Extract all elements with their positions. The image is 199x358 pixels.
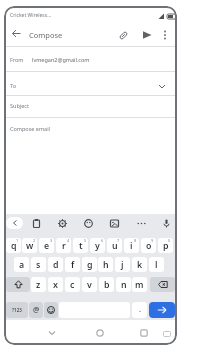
staticText: @ [33,305,40,315]
staticText: h [103,259,109,271]
button[interactable] [158,28,172,42]
button[interactable] [134,216,148,230]
button[interactable]: v [82,277,97,292]
button[interactable]: g [82,257,97,272]
staticText: 8 [134,238,137,243]
button[interactable] [107,216,121,230]
button[interactable] [55,216,69,230]
button[interactable]: f [65,257,80,272]
staticText: g [87,259,93,271]
button[interactable]: e [39,238,54,253]
staticText: 6 [101,238,104,243]
staticText: z [36,279,41,291]
staticText: s [36,259,41,271]
button[interactable]: Compose email [4,118,177,214]
button[interactable]: j [115,257,130,272]
staticText: ?123 [12,307,22,313]
staticText: j [121,259,124,271]
button[interactable]: m [132,277,147,292]
staticText: c [70,279,75,291]
staticText: l [155,259,158,271]
button[interactable]: l [149,257,164,272]
staticText: o [146,240,152,252]
button[interactable] [10,27,23,40]
staticText: 1 [16,238,19,243]
button[interactable]: k [132,257,147,272]
button[interactable]: u [107,238,122,253]
button[interactable]: @ [29,302,43,318]
button[interactable]: q [6,238,21,253]
staticText: n [121,279,127,291]
button[interactable]: n [116,277,131,292]
button[interactable] [159,216,173,230]
button[interactable]: a [14,257,29,272]
button[interactable]: y [90,238,105,253]
button[interactable]: x [48,277,63,292]
button[interactable]: To [4,72,177,95]
button[interactable]: z [31,277,46,292]
button[interactable] [116,28,130,42]
staticText: f [71,259,75,271]
staticText: lvmegan2@gmail.com [32,56,90,63]
button[interactable]: b [99,277,114,292]
button[interactable] [6,217,23,229]
button[interactable] [150,277,175,292]
button[interactable]: w [22,238,37,253]
button[interactable]: Subject [4,96,177,117]
staticText: To [10,82,17,89]
button[interactable] [6,277,30,292]
staticText: t [79,240,83,252]
staticText: Compose [29,30,63,40]
staticText: k [137,259,143,271]
staticText: 3 [50,238,53,243]
staticText: r [62,240,66,252]
staticText: m [135,279,144,291]
staticText: b [104,279,110,291]
button[interactable]: c [65,277,80,292]
staticText: Cricket Wireless... [10,12,52,19]
button[interactable]: s [31,257,46,272]
button[interactable]: t [73,238,88,253]
button[interactable]: From [4,47,177,71]
button[interactable] [44,302,58,318]
staticText: 9 [151,238,154,243]
button[interactable]: ?123 [6,302,28,318]
button[interactable] [137,326,151,340]
button[interactable]: p [158,238,173,253]
staticText: q [11,240,17,252]
button[interactable]: d [48,257,63,272]
button[interactable]: o [141,238,156,253]
staticText: e [44,240,50,252]
staticText: Compose email [10,125,50,132]
staticText: From [10,56,24,63]
button[interactable] [29,216,43,230]
staticText: p [163,240,169,252]
button[interactable]: i [124,238,139,253]
staticText: 4 [67,238,70,243]
staticText: a [19,259,25,271]
staticText: x [53,279,58,291]
staticText: i [130,240,133,252]
staticText: Subject [10,102,29,109]
button[interactable] [93,326,107,340]
staticText: w [26,240,34,252]
button[interactable]: h [98,257,113,272]
button[interactable] [45,326,59,340]
staticText: 0 [168,238,171,243]
button[interactable]: . [132,302,147,318]
button[interactable] [161,328,173,340]
staticText: y [95,240,100,252]
staticText: . [139,305,141,315]
staticText: 7 [117,238,120,243]
staticText: 2 [33,238,36,243]
staticText: v [87,279,92,291]
staticText: 5 [84,238,87,243]
button[interactable] [149,302,175,318]
button[interactable] [140,28,154,42]
staticText: d [53,259,59,271]
button[interactable] [81,216,95,230]
staticText: u [112,240,118,252]
button[interactable]: r [56,238,71,253]
